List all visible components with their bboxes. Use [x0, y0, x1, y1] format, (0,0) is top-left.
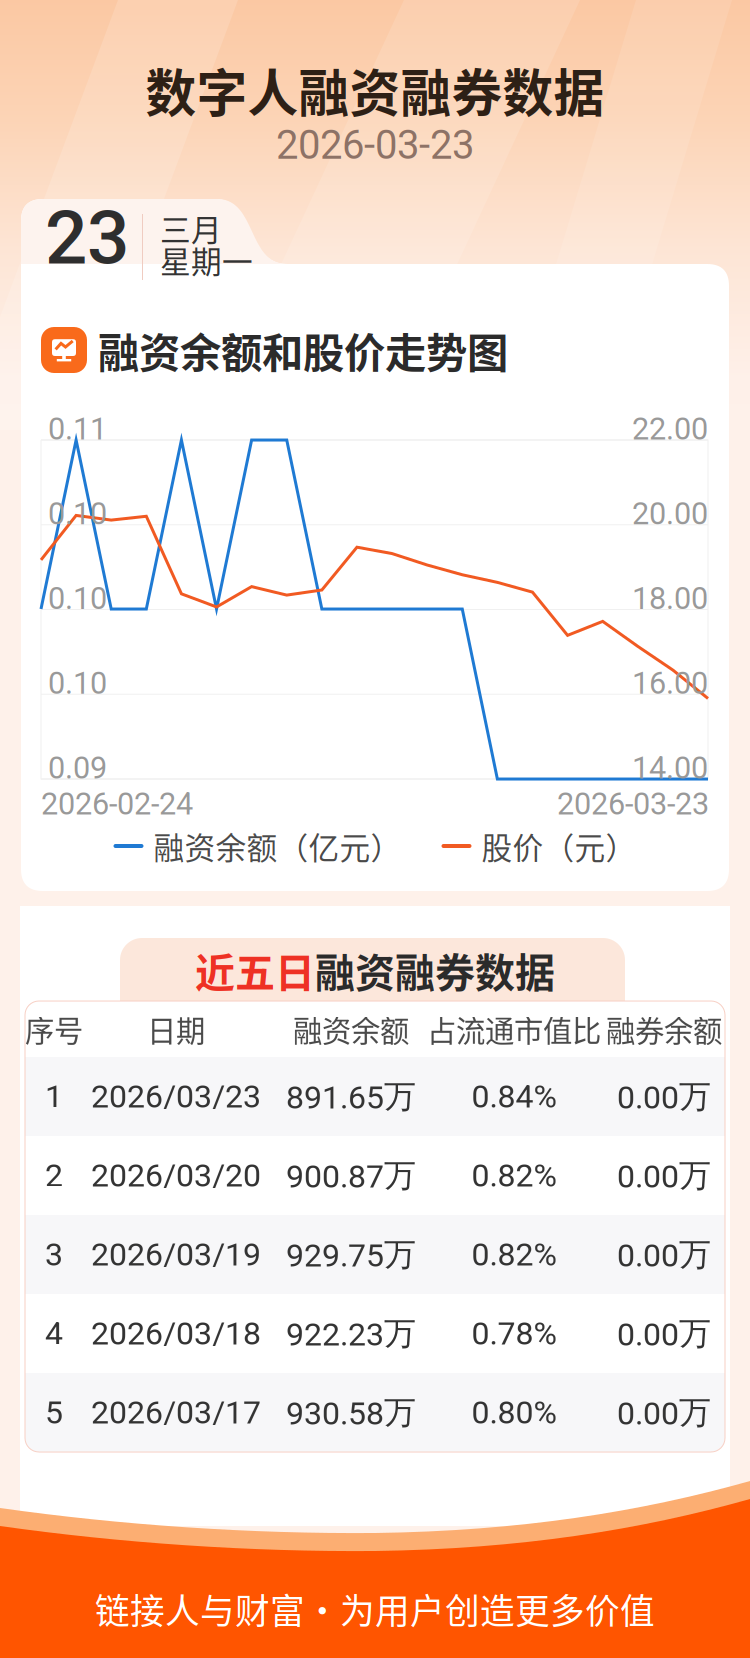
staticText: 2026-03-23	[276, 122, 474, 168]
staticText: 2026-03-23	[557, 786, 709, 822]
staticText: 融资融券数据	[315, 941, 555, 999]
staticText: 0.82%	[471, 1157, 556, 1194]
staticText: 930.58万	[286, 1392, 416, 1433]
staticText: 0.10	[48, 580, 107, 616]
staticText: 日期	[147, 1008, 205, 1050]
staticText: 0.78%	[471, 1315, 556, 1352]
staticText: 0.84%	[471, 1078, 556, 1115]
staticText: 891.65万	[286, 1076, 416, 1117]
staticText: 股价（元）	[481, 824, 636, 868]
staticText: 20.00	[632, 496, 708, 532]
staticText: 4	[45, 1315, 63, 1352]
staticText: 2026-02-24	[41, 786, 193, 822]
staticText: 占流通市值比	[427, 1008, 601, 1050]
staticText: 0.00万	[617, 1392, 711, 1433]
staticText: 星期一	[160, 238, 253, 282]
staticText: 14.00	[632, 750, 708, 786]
staticText: 0.80%	[471, 1394, 556, 1431]
staticText: 0.11	[48, 411, 107, 447]
staticText: 2026/03/18	[91, 1315, 261, 1352]
staticText: 融资余额（亿元）	[153, 824, 401, 868]
staticText: 2026/03/19	[91, 1236, 261, 1273]
staticText: 922.23万	[286, 1313, 416, 1354]
staticText: 3	[45, 1236, 63, 1273]
staticText: 三月	[160, 206, 222, 250]
staticText: 0.00万	[617, 1076, 711, 1117]
staticText: 2026/03/17	[91, 1394, 261, 1431]
staticText: 0.10	[48, 496, 107, 532]
staticText: 5	[45, 1394, 63, 1431]
staticText: 融资余额和股价走势图	[98, 320, 508, 380]
staticText: 929.75万	[286, 1234, 416, 1275]
staticText: 0.00万	[617, 1234, 711, 1275]
staticText: 融资余额	[293, 1008, 409, 1050]
staticText: 融券余额	[606, 1008, 722, 1050]
staticText: 2026/03/23	[91, 1078, 261, 1115]
staticText: 数字人融资融券数据	[145, 53, 604, 127]
staticText: 0.09	[48, 750, 107, 786]
staticText: 23	[45, 194, 129, 282]
staticText: 22.00	[632, 411, 708, 447]
staticText: 0.00万	[617, 1155, 711, 1196]
staticText: 序号	[25, 1008, 83, 1050]
staticText: 1	[45, 1078, 63, 1115]
staticText: 0.10	[48, 665, 107, 701]
staticText: 近五日	[195, 941, 315, 999]
staticText: 0.82%	[471, 1236, 556, 1273]
staticText: 2	[45, 1157, 63, 1194]
staticText: 16.00	[632, 665, 708, 701]
staticText: 2026/03/20	[91, 1157, 261, 1194]
staticText: 900.87万	[286, 1155, 416, 1196]
staticText: 18.00	[632, 580, 708, 616]
staticText: 0.00万	[617, 1313, 711, 1354]
staticText: 链接人与财富·为用户创造更多价值	[95, 1584, 655, 1634]
